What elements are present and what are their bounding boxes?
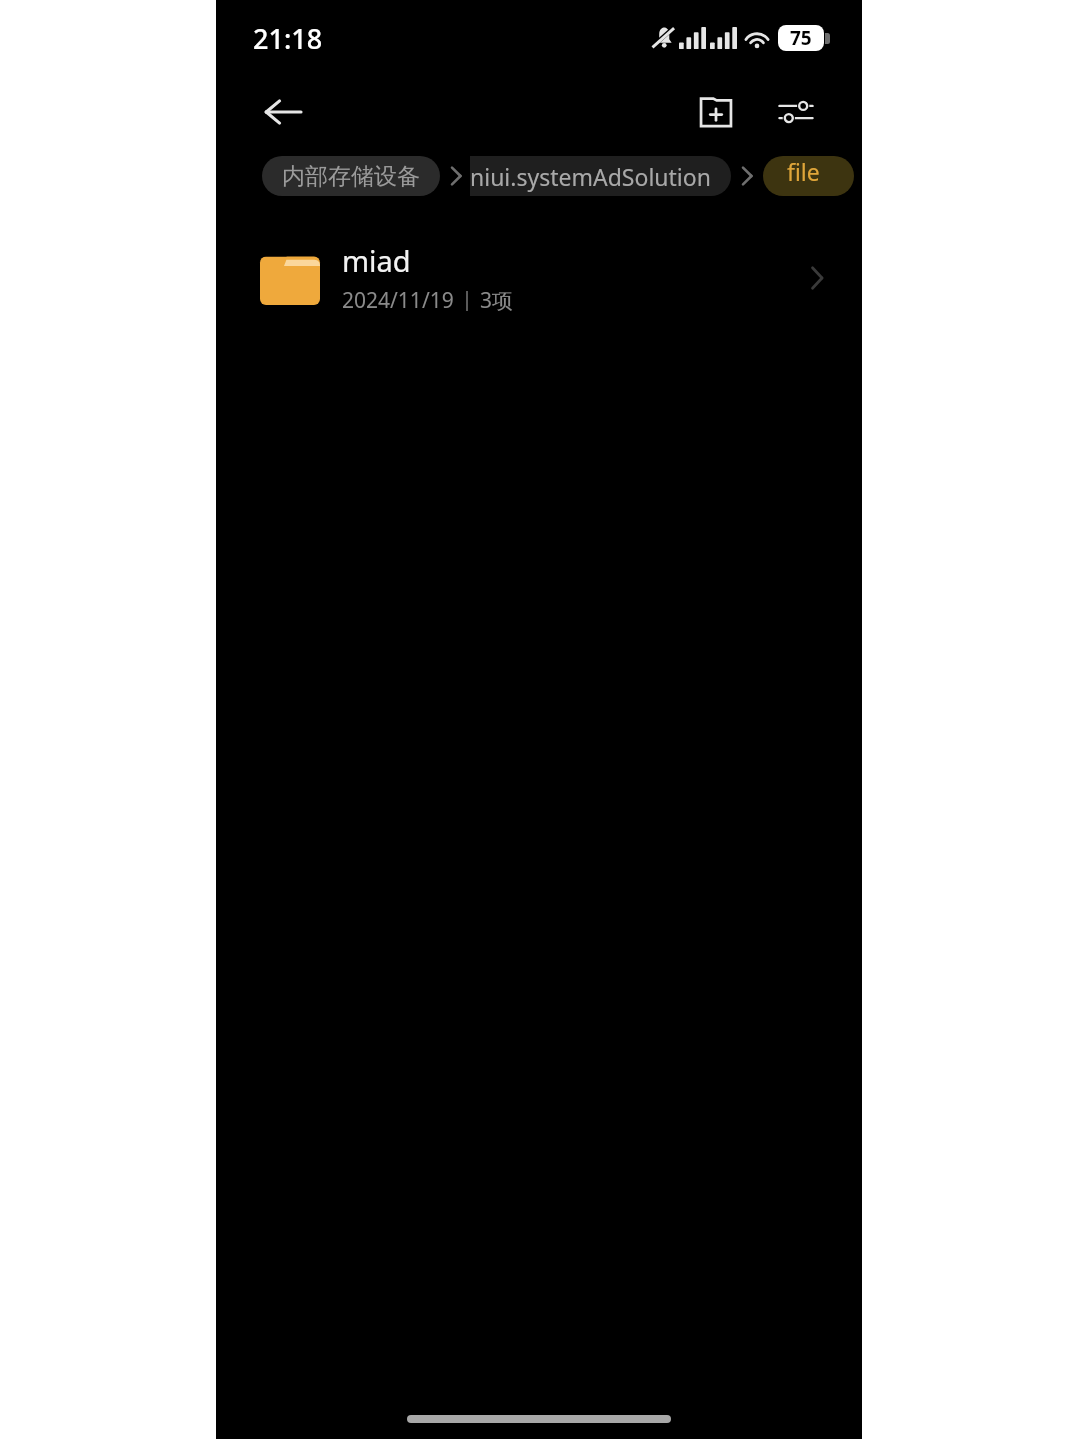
button[interactable]: miad bbox=[216, 230, 862, 326]
button[interactable]: Sort options bbox=[770, 86, 822, 138]
button[interactable]: New folder bbox=[690, 86, 742, 138]
staticText: 2024/11/19 bbox=[342, 286, 454, 315]
staticText: files bbox=[787, 156, 830, 196]
staticText: niui.systemAdSolution bbox=[470, 161, 711, 192]
button[interactable]: 内部存储设备 bbox=[262, 156, 440, 196]
button[interactable]: Back bbox=[258, 88, 306, 136]
staticText: 3项 bbox=[480, 286, 514, 315]
button[interactable]: niui.systemAdSolution bbox=[470, 156, 731, 196]
staticText: miad bbox=[342, 241, 411, 280]
staticText: 75 bbox=[790, 25, 812, 51]
staticText: 内部存储设备 bbox=[282, 162, 420, 191]
staticText: 21:18 bbox=[253, 20, 323, 57]
button[interactable]: files bbox=[763, 156, 854, 196]
